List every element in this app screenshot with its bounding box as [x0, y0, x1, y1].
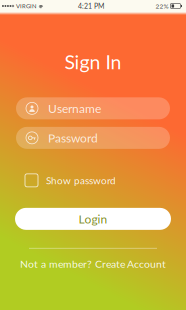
staticText: VIRGIN [16, 2, 36, 9]
button[interactable]: Not a member? Create Account [0, 257, 186, 271]
staticText: 22% [155, 2, 168, 10]
button[interactable]: Password [16, 127, 170, 149]
button[interactable]: Show password [0, 174, 186, 187]
staticText: Show password [46, 174, 116, 186]
staticText: 4:21 PM [78, 2, 104, 10]
button[interactable]: Login [0, 208, 186, 230]
button[interactable]: Username [16, 97, 170, 119]
staticText: Password [48, 131, 98, 145]
staticText: Login [78, 212, 107, 226]
staticText: Username [48, 101, 101, 116]
staticText: Sign In [64, 50, 121, 73]
staticText: Not a member? Create Account [20, 257, 166, 270]
